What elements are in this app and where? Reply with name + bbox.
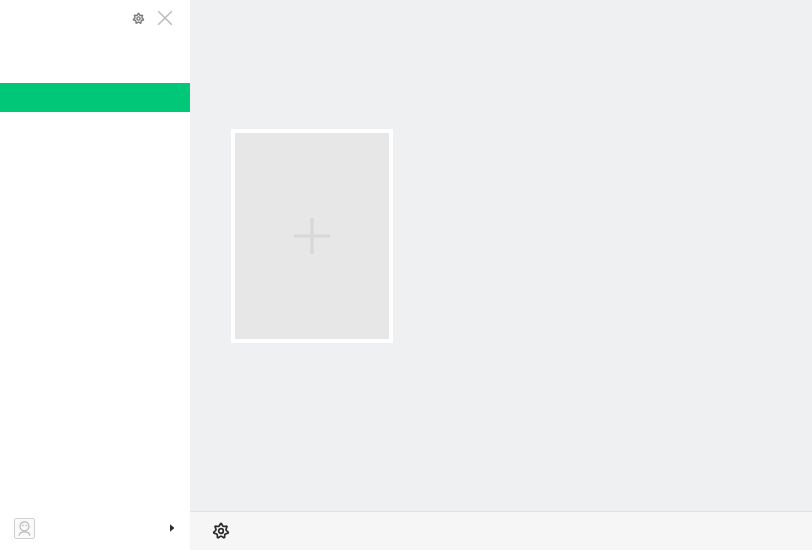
button[interactable]: Settings: [128, 8, 148, 28]
button[interactable]: Expand: [162, 518, 182, 538]
other: Profile: [14, 518, 35, 539]
button[interactable]: Close: [154, 7, 176, 29]
button[interactable]: Profile: [0, 506, 190, 550]
button[interactable]: Settings: [206, 516, 236, 546]
